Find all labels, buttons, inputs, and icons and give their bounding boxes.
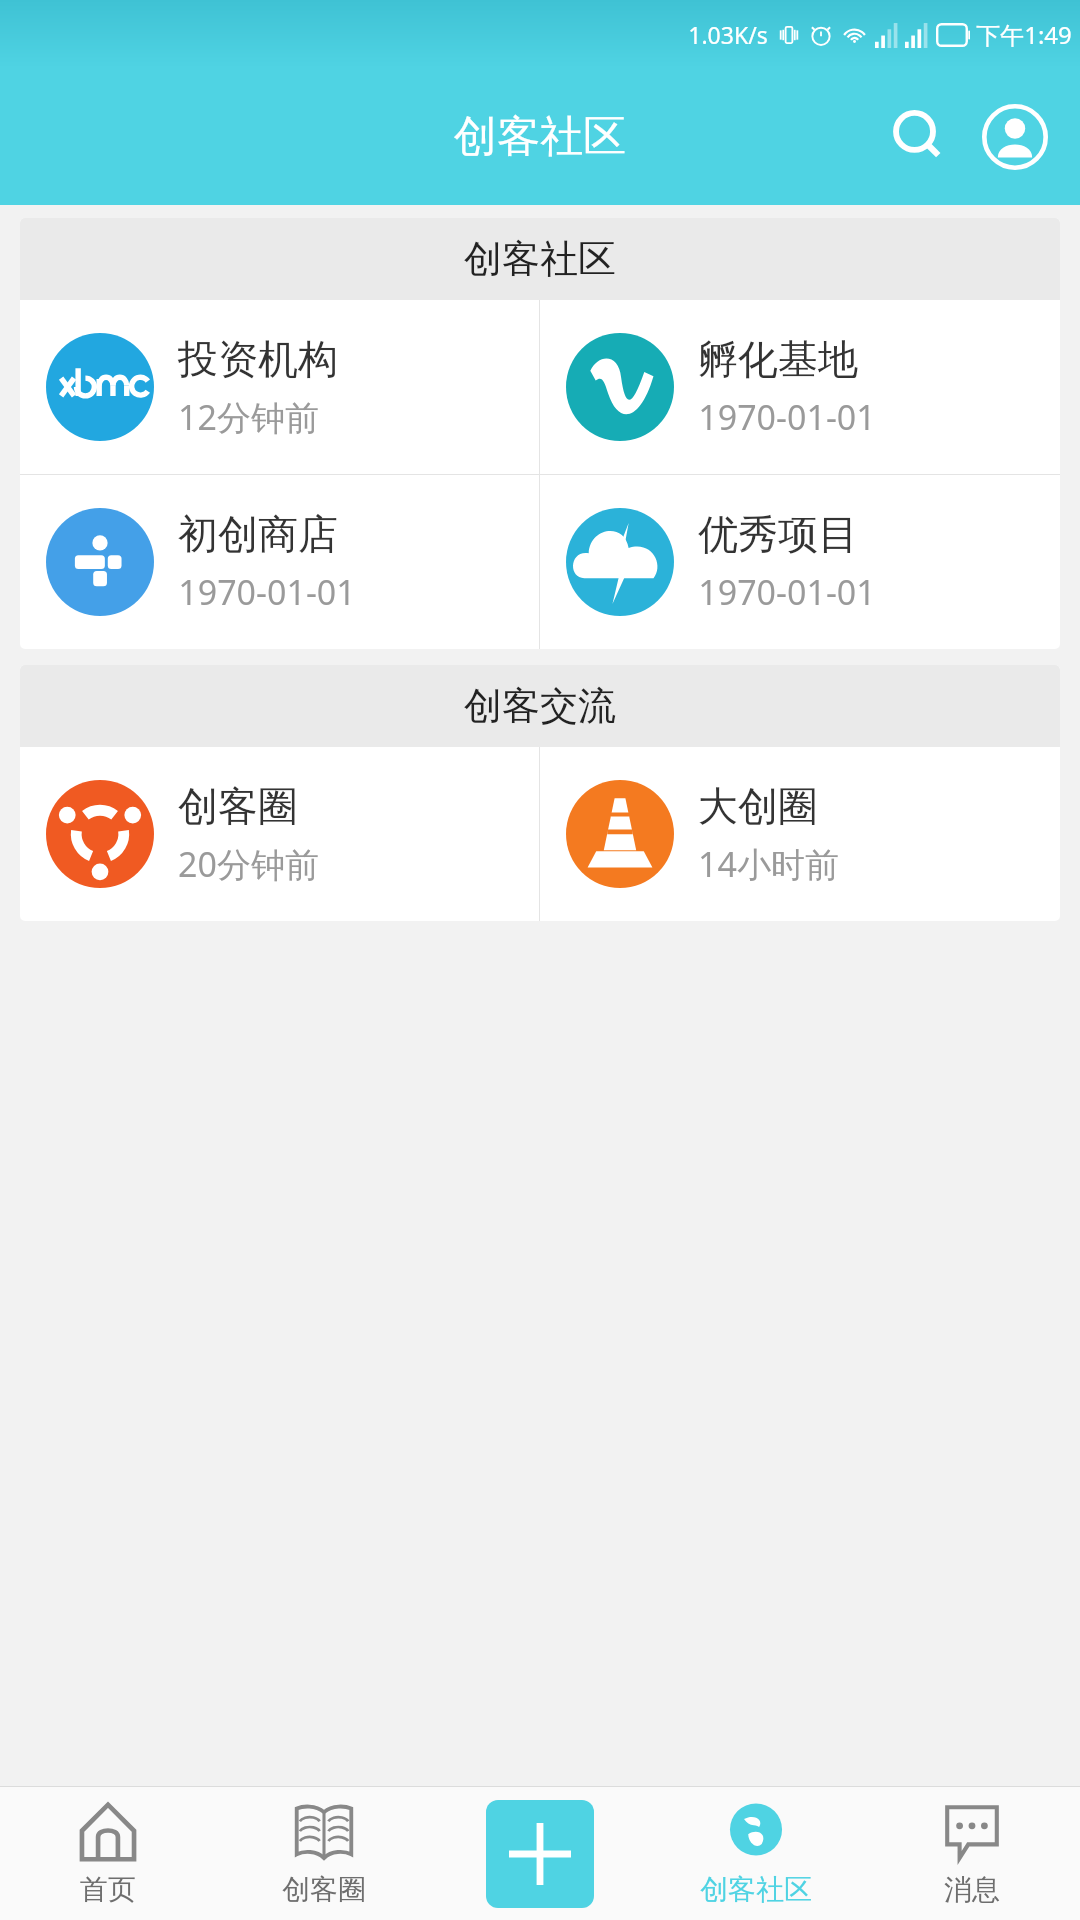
button[interactable]: 搜索	[880, 98, 958, 176]
staticText: 创客社区	[464, 235, 616, 283]
staticText: 投资机构	[178, 334, 338, 384]
staticText: 大创圈	[698, 781, 818, 831]
button[interactable]: 初创商店	[20, 475, 539, 649]
button[interactable]: 大创圈	[540, 747, 1060, 921]
staticText: 创客社区	[700, 1872, 812, 1907]
staticText: 初创商店	[178, 509, 338, 559]
button[interactable]: 创客社区	[648, 1787, 864, 1920]
staticText: 1970-01-01	[698, 569, 876, 615]
staticText: 14小时前	[698, 841, 839, 887]
staticText: 创客交流	[464, 682, 616, 730]
staticText: 首页	[80, 1872, 136, 1907]
staticText: 消息	[944, 1872, 1000, 1907]
button[interactable]: 首页	[0, 1787, 216, 1920]
staticText: 创客社区	[454, 110, 626, 164]
button[interactable]: 投资机构	[20, 300, 539, 474]
staticText: 12分钟前	[178, 394, 319, 440]
staticText: 1970-01-01	[698, 394, 876, 440]
staticText: 创客圈	[178, 781, 298, 831]
button[interactable]: 发布	[432, 1787, 648, 1920]
button[interactable]: 个人中心	[976, 98, 1054, 176]
staticText: 1970-01-01	[178, 569, 356, 615]
staticText: 创客圈	[282, 1872, 366, 1907]
staticText: 1.03K/s	[688, 19, 768, 50]
button[interactable]: 创客圈	[216, 1787, 432, 1920]
button[interactable]: 孵化基地	[540, 300, 1060, 474]
staticText: 20分钟前	[178, 841, 319, 887]
button[interactable]: 优秀项目	[540, 475, 1060, 649]
staticText: 优秀项目	[698, 509, 858, 559]
button[interactable]: 创客圈	[20, 747, 539, 921]
staticText: 孵化基地	[698, 334, 858, 384]
staticText: 下午1:49	[976, 18, 1072, 51]
button[interactable]: 消息	[864, 1787, 1080, 1920]
